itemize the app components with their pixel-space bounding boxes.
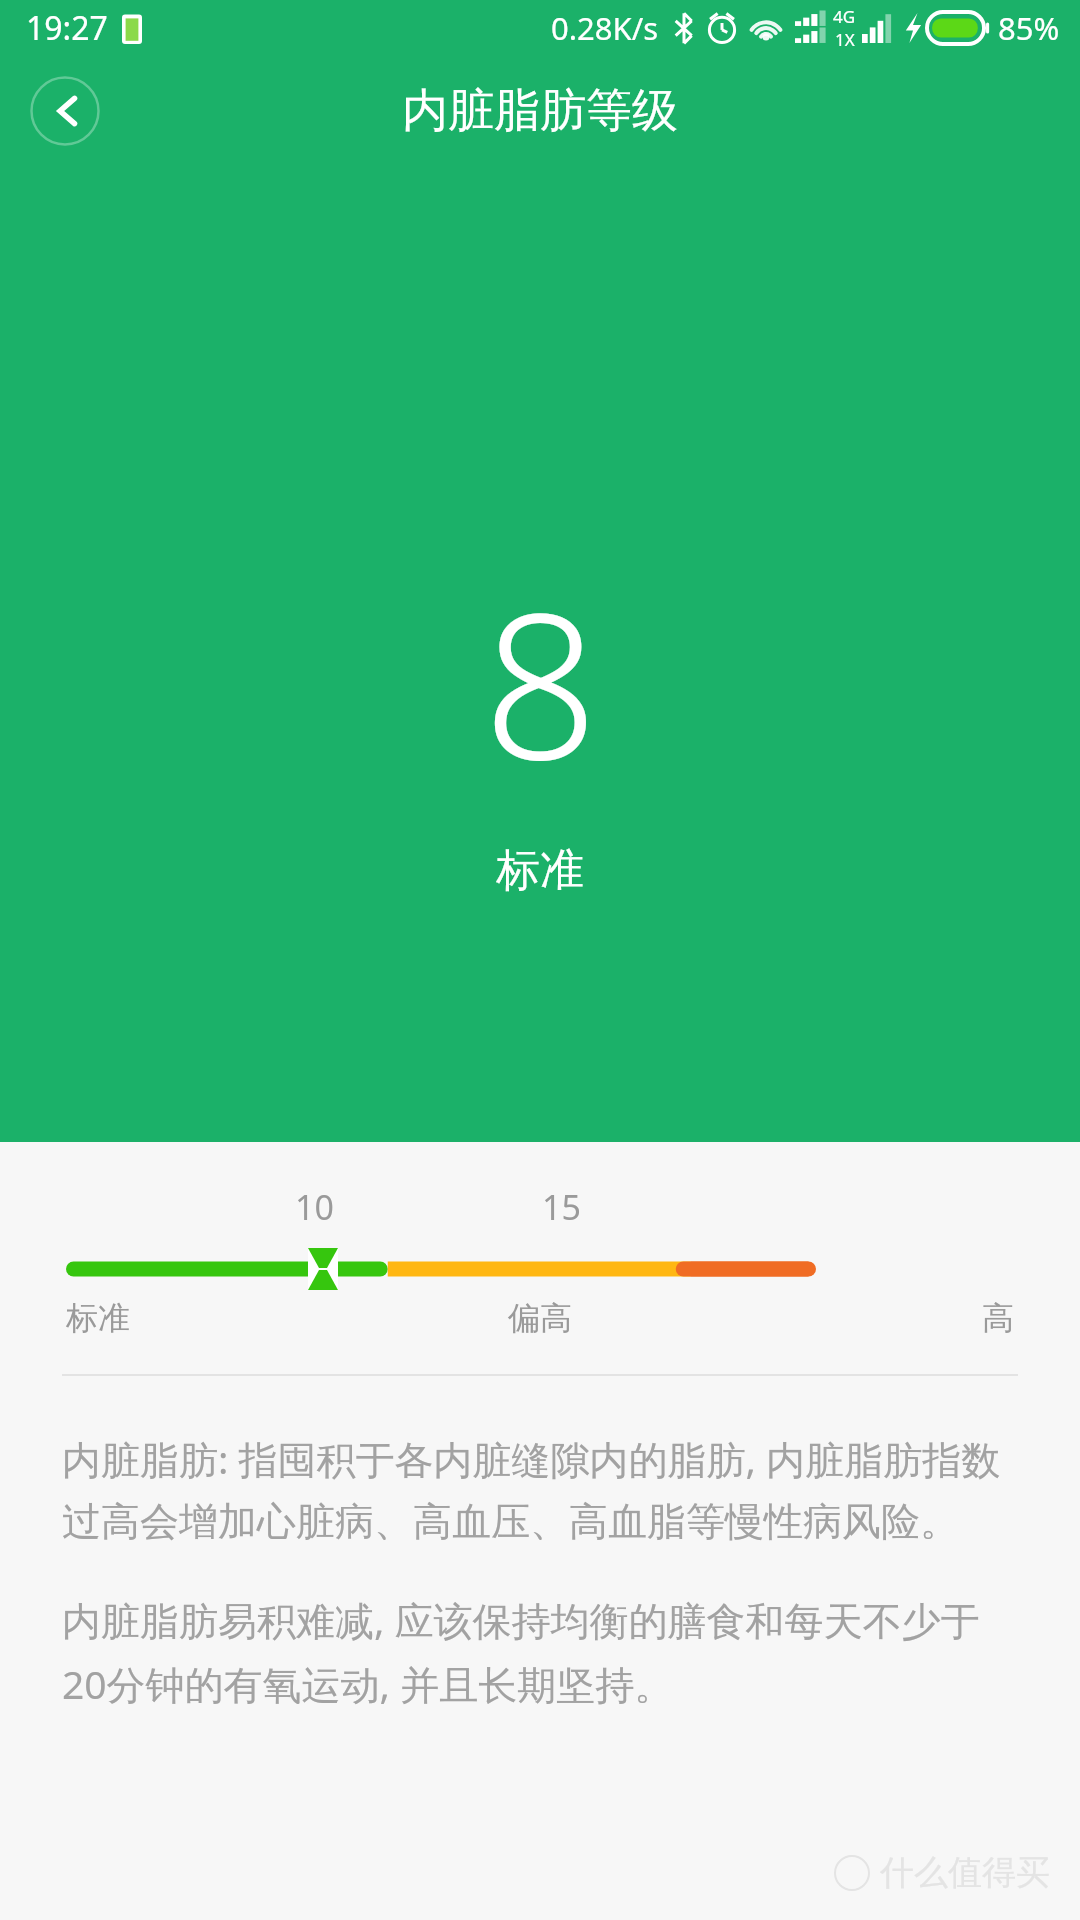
staticText: 19:27 — [26, 6, 108, 50]
staticText: 0.28K/s — [551, 7, 659, 49]
staticText: 高 — [982, 1298, 1014, 1338]
staticText: 1X — [835, 28, 855, 51]
staticText: 标准 — [66, 1298, 130, 1338]
staticText: 什么值得买 — [880, 1851, 1050, 1894]
staticText: 85% — [998, 7, 1060, 49]
staticText: 15 — [542, 1184, 581, 1230]
staticText: 标准 — [496, 843, 584, 898]
staticText: 8 — [483, 545, 598, 817]
staticText: 内脏脂肪等级 — [402, 82, 678, 140]
staticText: 内脏脂肪: 指囤积于各内脏缝隙内的脂肪, 内脏脂肪指数过高会增加心脏病、高血压、… — [62, 1432, 1018, 1547]
button[interactable]: Back — [30, 76, 100, 146]
staticText: 4G — [833, 5, 856, 28]
staticText: 偏高 — [508, 1298, 572, 1338]
staticText: 10 — [295, 1184, 334, 1230]
staticText: 内脏脂肪易积难减, 应该保持均衡的膳食和每天不少于20分钟的有氧运动, 并且长期… — [62, 1593, 1018, 1710]
